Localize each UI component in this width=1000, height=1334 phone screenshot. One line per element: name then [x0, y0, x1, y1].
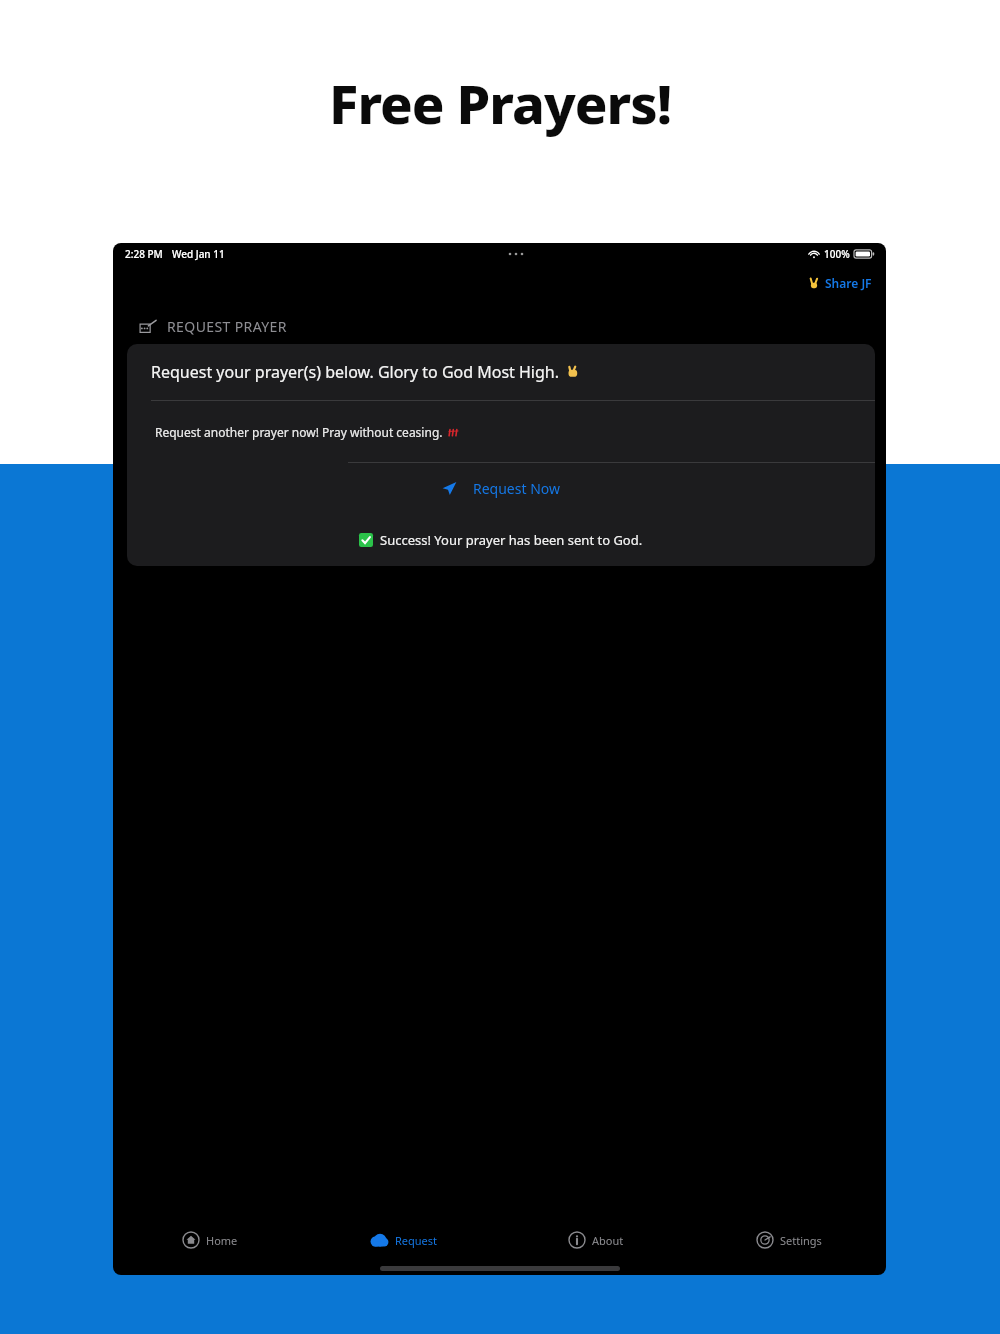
staticText: Free Prayers! [329, 66, 672, 140]
other: Request [370, 1234, 388, 1247]
other: About [569, 1232, 585, 1248]
button[interactable]: Request another prayer now! Pray without… [127, 401, 875, 462]
button[interactable]: Request [307, 1233, 500, 1248]
staticText: Success! Your prayer has been sent to Go… [380, 531, 643, 549]
staticText: Request Now [473, 479, 560, 498]
other: Home [183, 1232, 199, 1248]
staticText: Share JF [825, 275, 872, 291]
staticText: 2:28 PM [125, 247, 163, 261]
staticText: Request [395, 1233, 438, 1248]
staticText: REQUEST PRAYER [167, 317, 287, 336]
button[interactable]: Request Now [127, 463, 875, 513]
button[interactable]: Settings [693, 1232, 886, 1248]
staticText: Request your prayer(s) below. Glory to G… [151, 361, 560, 383]
button[interactable]: Request your prayer(s) below. Glory to G… [127, 344, 875, 400]
button[interactable]: About [500, 1232, 693, 1248]
other: Settings [757, 1232, 773, 1248]
staticText: Settings [780, 1233, 822, 1248]
staticText: 100% [824, 247, 850, 261]
staticText: About [592, 1233, 624, 1248]
staticText: Home [206, 1233, 238, 1248]
button[interactable]: Share JF [806, 271, 874, 295]
button[interactable]: Home [113, 1232, 307, 1248]
staticText: Wed Jan 11 [172, 247, 225, 261]
staticText: Request another prayer now! Pray without… [155, 424, 443, 440]
